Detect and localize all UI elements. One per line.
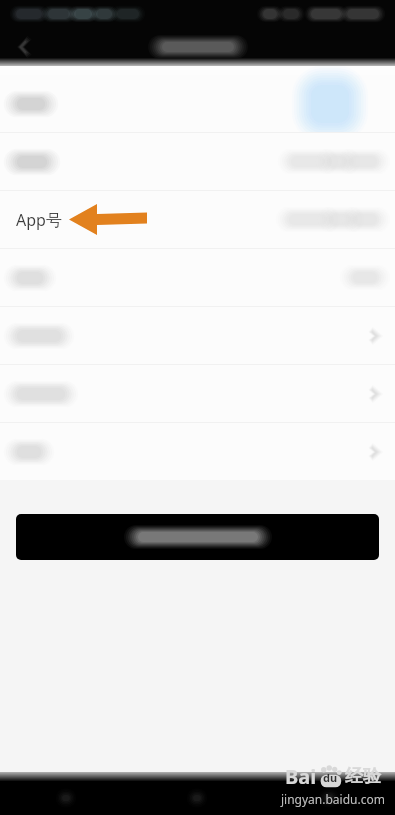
button[interactable]: Navigation <box>0 781 131 815</box>
button[interactable] <box>0 249 395 306</box>
button[interactable] <box>0 365 395 422</box>
button[interactable]: App号 <box>0 191 395 248</box>
button[interactable] <box>16 514 379 560</box>
button[interactable] <box>0 307 395 364</box>
button[interactable] <box>0 423 395 480</box>
staticText: jingyan.baidu.com <box>281 791 385 807</box>
button[interactable]: Navigation <box>131 781 263 815</box>
button[interactable] <box>0 133 395 190</box>
staticText: du <box>323 770 338 785</box>
staticText: 经验 <box>345 765 381 788</box>
button[interactable] <box>0 75 395 132</box>
staticText: App号 <box>16 209 62 231</box>
staticText: Bai <box>285 763 317 790</box>
button[interactable]: Back <box>10 33 38 61</box>
button[interactable]: Navigation <box>263 781 395 815</box>
